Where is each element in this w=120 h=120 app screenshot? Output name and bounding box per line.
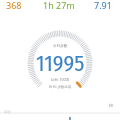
staticText: 目标: 10000 <box>51 77 70 82</box>
staticText: 368 <box>6 0 22 11</box>
button[interactable]: 368 <box>4 0 24 13</box>
button[interactable]: 运动 <box>4 110 11 114</box>
staticText: 运动 <box>4 110 11 114</box>
staticText: 昨日: 步数达成 <box>49 84 72 89</box>
staticText: 11995 <box>36 50 85 76</box>
staticText: 7.91 <box>94 0 112 11</box>
staticText: 今日步数 <box>53 44 68 49</box>
staticText: 1h 27m <box>43 0 75 11</box>
button[interactable]: 7.91 <box>92 0 114 13</box>
button[interactable]: More <box>109 103 113 107</box>
button[interactable]: 1h 27m <box>41 0 77 13</box>
